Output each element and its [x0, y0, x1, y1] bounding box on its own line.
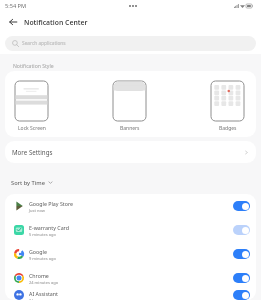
staticText: Lock Screen: [18, 125, 46, 132]
button[interactable]: Badges: [207, 81, 248, 132]
button[interactable]: Google Play Store: [5, 194, 256, 218]
staticText: Badges: [219, 125, 237, 132]
staticText: 9 minutes ago: [29, 256, 56, 261]
staticText: Notification Center: [24, 18, 88, 27]
button[interactable]: E-warranty Card: [5, 218, 256, 242]
staticText: 5:54 PM: [5, 2, 27, 10]
button[interactable]: Toggle notifications: [233, 290, 250, 300]
staticText: Banners: [120, 125, 140, 132]
button[interactable]: Toggle notifications: [233, 249, 250, 259]
button[interactable]: More Settings: [5, 141, 256, 163]
button[interactable]: Google: [5, 242, 256, 266]
button[interactable]: Search applications: [5, 36, 256, 51]
staticText: 24 minutes ago: [29, 280, 59, 285]
button[interactable]: Chrome: [5, 266, 256, 290]
button[interactable]: Toggle notifications: [233, 225, 250, 235]
staticText: AI Assistant: [29, 290, 58, 297]
staticText: More Settings: [12, 148, 53, 156]
staticText: Chrome: [29, 272, 49, 279]
staticText: Google: [29, 248, 47, 255]
staticText: Sort by Time: [11, 179, 45, 187]
staticText: 1 hour ago: [29, 298, 50, 300]
staticText: Search applications: [22, 40, 66, 47]
button[interactable]: Sort by Time: [11, 176, 53, 189]
staticText: Notification Style: [13, 63, 54, 70]
staticText: Google Play Store: [29, 200, 73, 207]
staticText: E-warranty Card: [29, 224, 69, 231]
button[interactable]: Lock Screen: [11, 81, 52, 132]
button[interactable]: Back: [5, 14, 21, 30]
button[interactable]: Toggle notifications: [233, 201, 250, 211]
button[interactable]: AI Assistant: [5, 290, 256, 300]
staticText: 5 minutes ago: [29, 232, 56, 237]
staticText: Just now: [29, 208, 45, 213]
button[interactable]: Toggle notifications: [233, 273, 250, 283]
button[interactable]: Banners: [109, 81, 150, 132]
